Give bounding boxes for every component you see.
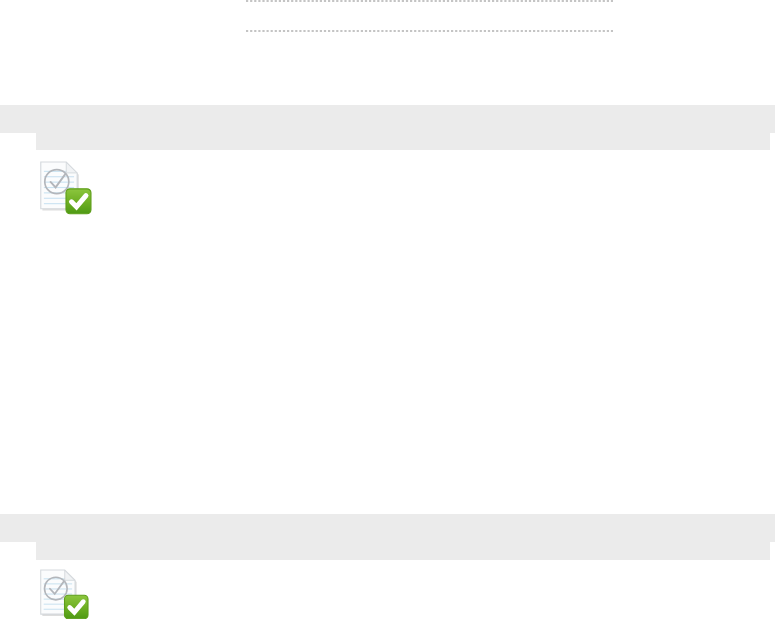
button[interactable]: Approved document: [40, 162, 92, 214]
button[interactable]: Approved document: [40, 570, 92, 619]
